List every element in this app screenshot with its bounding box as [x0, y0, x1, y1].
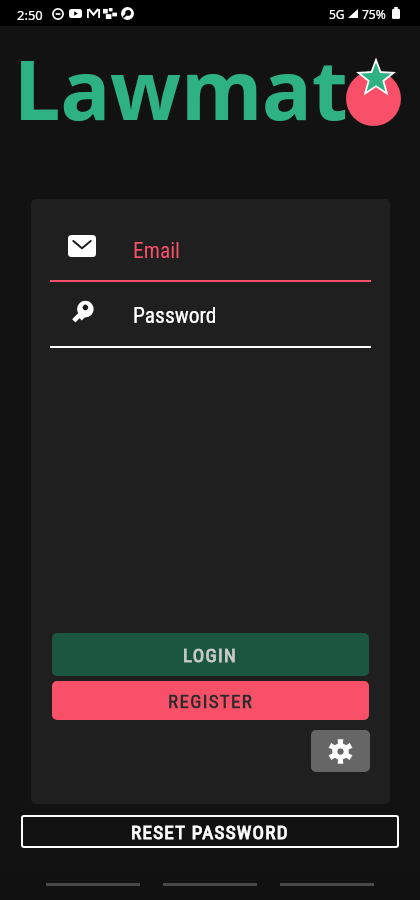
button[interactable]: RESET PASSWORD	[21, 815, 399, 848]
button[interactable]: Settings	[311, 730, 370, 772]
staticText: 2:50	[17, 6, 43, 24]
staticText: LOGIN	[183, 644, 238, 666]
staticText: RESET PASSWORD	[131, 821, 289, 843]
staticText: 5G	[329, 6, 345, 22]
staticText: REGISTER	[168, 690, 254, 712]
staticText: Lawmat	[14, 31, 348, 144]
staticText: Password	[133, 303, 217, 328]
staticText: Email	[133, 238, 181, 263]
button[interactable]: REGISTER	[52, 681, 369, 720]
staticText: 75%	[362, 6, 386, 22]
button[interactable]: LOGIN	[52, 633, 369, 676]
